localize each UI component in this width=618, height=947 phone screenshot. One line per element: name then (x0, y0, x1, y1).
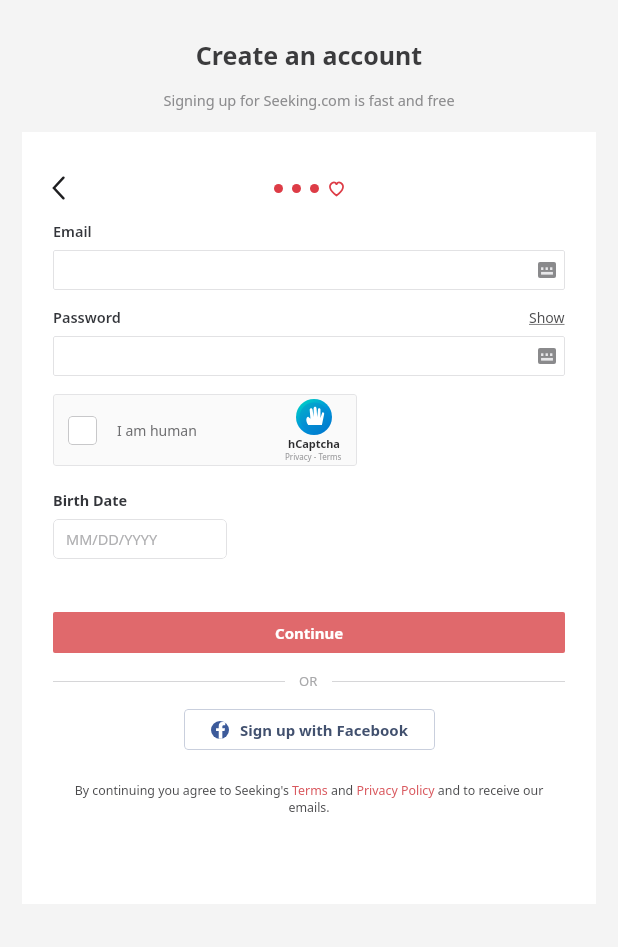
staticText: Birth Date (53, 490, 128, 510)
button[interactable]: Back (42, 171, 76, 205)
button[interactable] (53, 250, 565, 290)
staticText: MM/DD/YYYY (66, 529, 158, 549)
button[interactable]: I am human (53, 394, 357, 466)
staticText: Email (53, 221, 92, 241)
button[interactable]: Sign up with Facebook (184, 709, 435, 750)
staticText: Password (53, 307, 121, 327)
button[interactable]: MM/DD/YYYY (53, 519, 227, 559)
staticText: hCaptcha (288, 436, 340, 451)
button[interactable]: Continue (53, 612, 565, 653)
button[interactable]: Show (529, 308, 565, 327)
staticText: I am human (117, 421, 197, 440)
staticText: Continue (275, 623, 344, 643)
staticText: Show (529, 308, 565, 327)
staticText: Create an account (0, 38, 618, 72)
staticText: Signing up for Seeking.com is fast and f… (0, 90, 618, 110)
staticText: By continuing you agree to Seeking's Ter… (53, 782, 565, 816)
staticText: Privacy - Terms (285, 451, 342, 462)
staticText: OR (299, 672, 318, 690)
staticText: Sign up with Facebook (240, 720, 408, 740)
button[interactable] (53, 336, 565, 376)
